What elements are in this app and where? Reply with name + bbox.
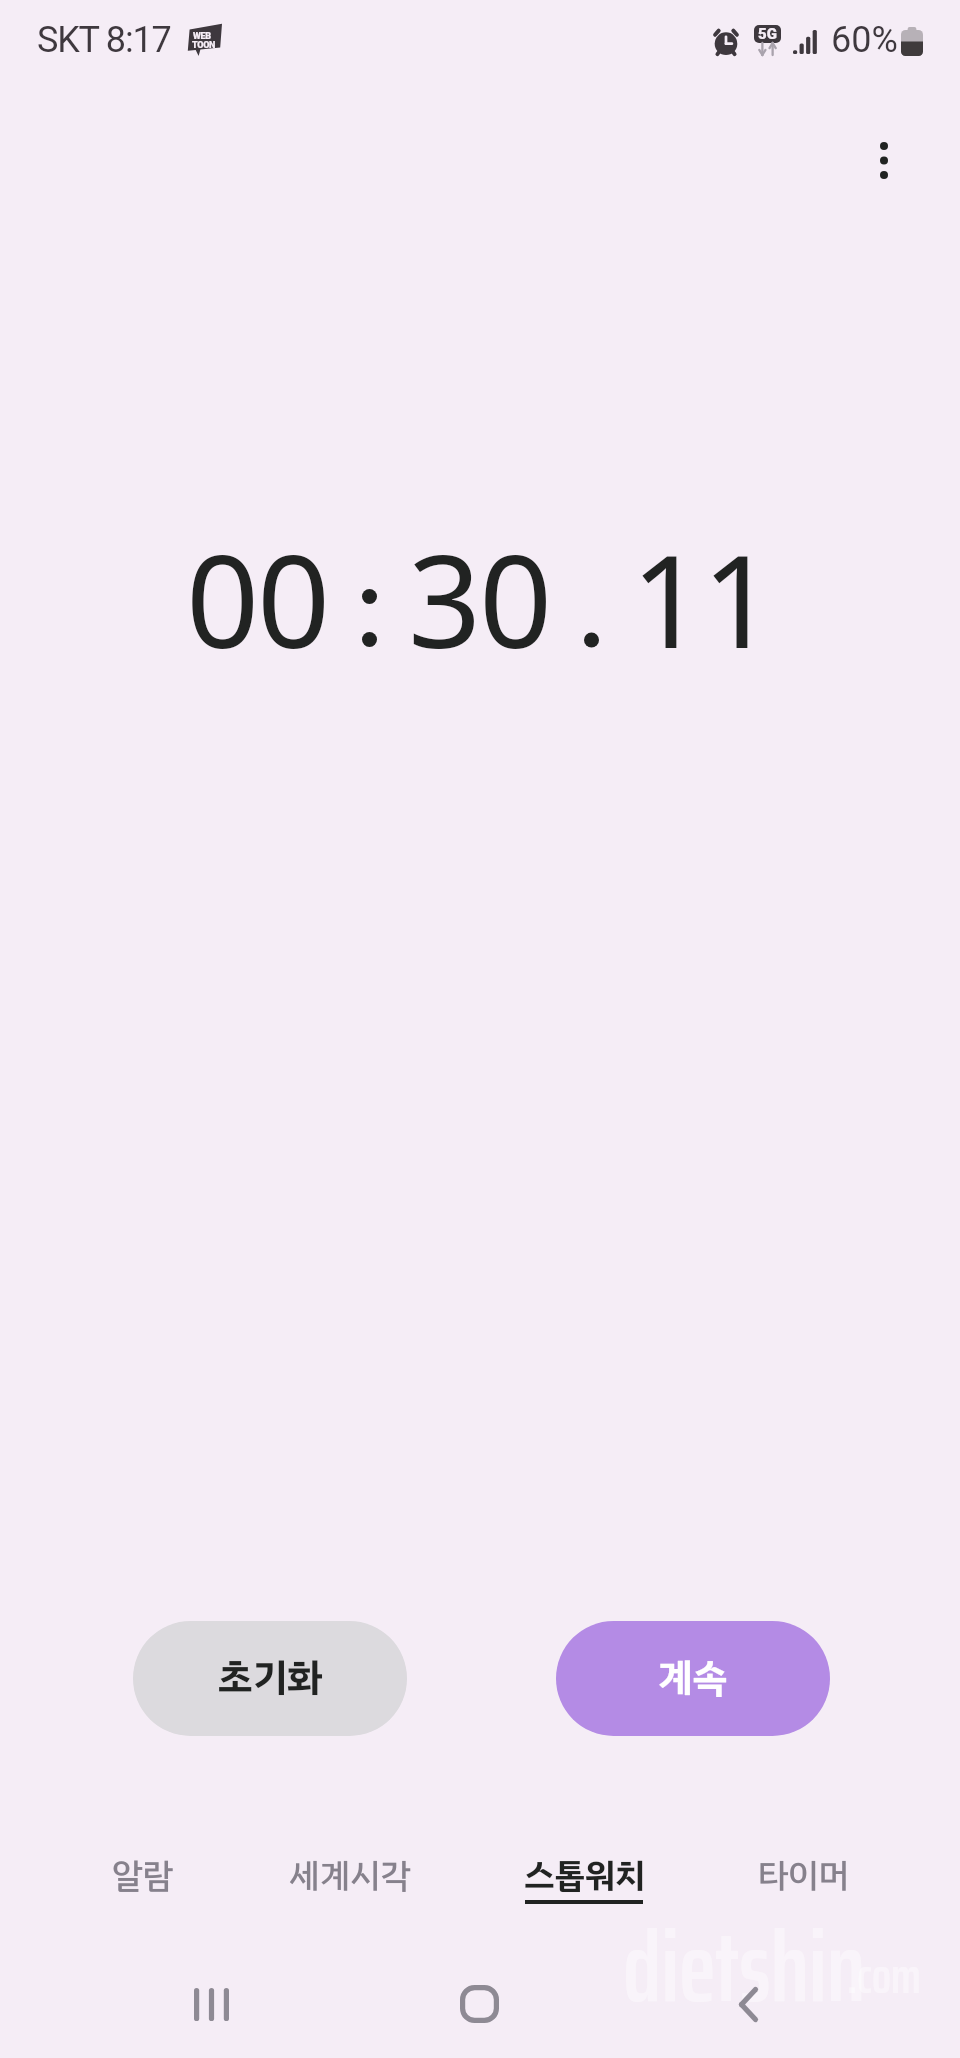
staticText: 30 xyxy=(408,511,551,685)
staticText: 계속 xyxy=(658,1649,728,1708)
staticText: 스톱워치 xyxy=(524,1850,646,1901)
staticText: SKT 8:17 xyxy=(37,19,171,61)
button[interactable]: More options xyxy=(812,96,956,224)
button[interactable]: 계속 xyxy=(556,1621,830,1736)
staticText: TOON xyxy=(192,40,216,51)
button[interactable]: 타이머 xyxy=(701,1806,906,1926)
button[interactable]: 초기화 xyxy=(133,1621,407,1736)
staticText: dietshin xyxy=(623,1890,866,2044)
staticText: .com xyxy=(847,1936,921,2015)
staticText: 5G xyxy=(758,25,777,43)
staticText: 알람 xyxy=(112,1850,173,1901)
button[interactable]: Recent apps xyxy=(151,1964,271,2044)
staticText: 60% xyxy=(831,19,898,61)
staticText: 초기화 xyxy=(218,1649,323,1708)
staticText: WEB xyxy=(193,31,211,42)
button[interactable]: 세계시각 xyxy=(247,1806,452,1926)
staticText: 00 xyxy=(186,511,329,685)
button[interactable]: 알람 xyxy=(40,1806,245,1926)
button[interactable]: Home xyxy=(419,1964,539,2044)
staticText: 타이머 xyxy=(758,1850,849,1901)
button[interactable]: Back xyxy=(688,1964,808,2044)
staticText: 11 xyxy=(631,511,774,685)
button[interactable]: 스톱워치 xyxy=(482,1806,687,1926)
staticText: 세계시각 xyxy=(289,1850,411,1901)
